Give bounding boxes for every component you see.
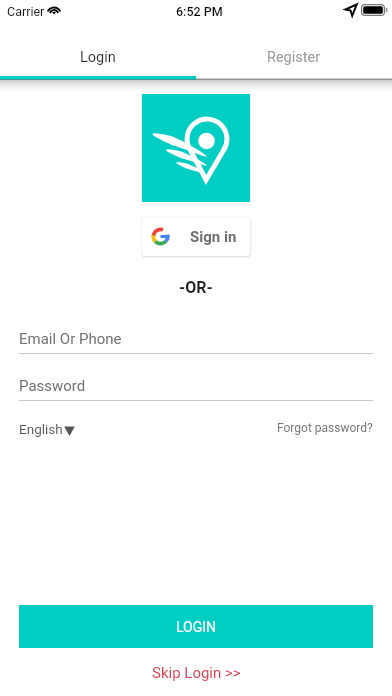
staticText: Password	[19, 377, 86, 395]
button[interactable]: Login	[0, 49, 196, 79]
staticText: Email Or Phone	[19, 330, 122, 348]
button[interactable]: Register	[196, 49, 392, 79]
staticText: English	[19, 421, 63, 437]
button[interactable]: Forgot password?	[277, 421, 373, 435]
button[interactable]: LOGIN	[19, 605, 373, 648]
button[interactable]: Skip Login >>	[152, 664, 241, 682]
staticText: Carrier	[7, 4, 45, 19]
staticText: -OR-	[179, 278, 213, 297]
button[interactable]: Sign in	[142, 217, 250, 256]
staticText: Sign in	[190, 228, 237, 246]
staticText: LOGIN	[176, 619, 217, 635]
button[interactable]: English	[19, 421, 76, 437]
staticText: 6:52 PM	[176, 4, 223, 19]
staticText: Login	[80, 49, 116, 66]
staticText: Register	[267, 49, 321, 66]
